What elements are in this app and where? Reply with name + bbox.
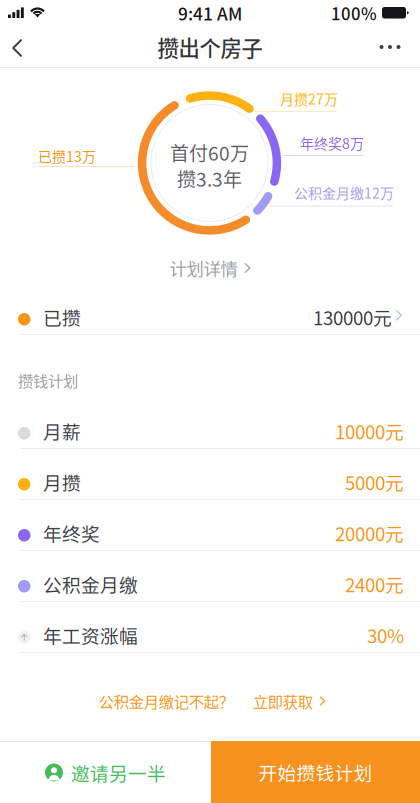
button[interactable]: 月攒: [0, 449, 420, 500]
staticText: 30%: [367, 621, 404, 648]
staticText: 公积金月缴12万: [294, 182, 394, 203]
staticText: 攒出个房子: [157, 32, 262, 62]
button[interactable]: 更多: [366, 26, 414, 68]
staticText: 立即获取: [253, 690, 313, 712]
button[interactable]: 年终奖: [0, 500, 420, 551]
button[interactable]: 计划详情: [140, 253, 280, 283]
staticText: 年终奖: [43, 519, 100, 546]
button[interactable]: 公积金月缴: [0, 551, 420, 602]
staticText: 20000元: [335, 519, 404, 546]
staticText: 月薪: [43, 417, 81, 444]
button[interactable]: 开始攒钱计划: [211, 741, 420, 803]
button[interactable]: 邀请另一半: [0, 742, 211, 803]
staticText: 公积金月缴: [43, 570, 138, 597]
staticText: 攒3.3年: [177, 165, 242, 192]
staticText: 10000元: [335, 417, 404, 444]
staticText: 开始攒钱计划: [258, 758, 372, 785]
button[interactable]: 月薪: [0, 398, 420, 449]
button[interactable]: 年工资涨幅: [0, 602, 420, 653]
staticText: 已攒: [43, 303, 81, 330]
staticText: 月攒: [43, 468, 81, 495]
staticText: 计划详情: [169, 255, 237, 281]
staticText: 9:41 AM: [178, 0, 242, 26]
staticText: 年工资涨幅: [43, 621, 138, 648]
staticText: 130000元: [313, 303, 392, 330]
staticText: 2400元: [345, 570, 404, 597]
staticText: 5000元: [345, 468, 404, 495]
staticText: 邀请另一半: [71, 759, 166, 786]
staticText: 月攒27万: [280, 88, 338, 109]
staticText: 公积金月缴记不起？: [99, 690, 234, 712]
staticText: 首付60万: [170, 139, 249, 166]
staticText: 攒钱计划: [18, 369, 78, 391]
staticText: 年终奖8万: [300, 133, 364, 153]
staticText: 100%: [331, 1, 377, 25]
button[interactable]: 公积金月缴记不起？: [62, 685, 362, 717]
staticText: 已攒13万: [38, 146, 96, 166]
button[interactable]: 返回: [0, 26, 44, 68]
button[interactable]: 已攒: [0, 284, 420, 335]
